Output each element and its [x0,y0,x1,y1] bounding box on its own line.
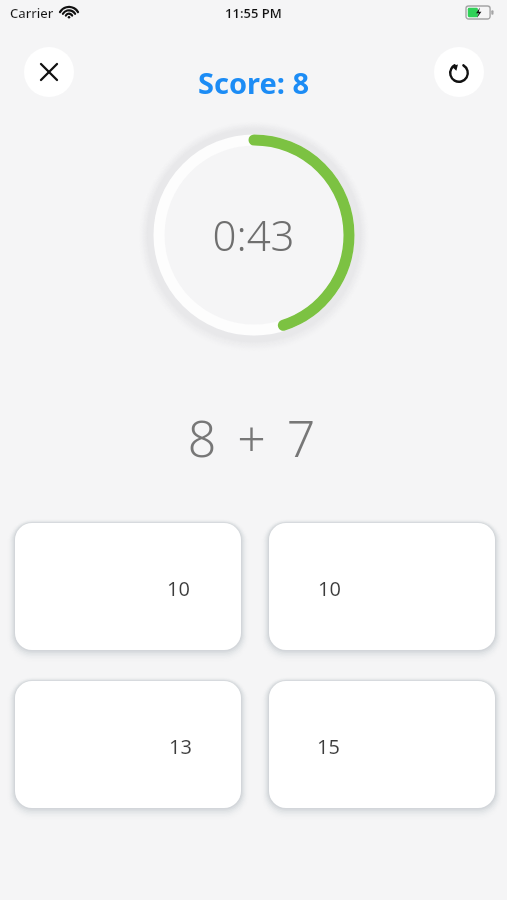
button[interactable]: Restart [434,47,484,97]
staticText: 15 [317,733,340,759]
staticText: 10 [167,575,190,601]
staticText: 0:43 [0,206,507,900]
staticText: 8 + 7 [0,404,507,900]
button[interactable] [15,681,241,808]
button[interactable] [269,523,495,650]
button[interactable]: Close [24,47,74,97]
staticText: Score: 8 [0,63,507,900]
staticText: 13 [169,733,192,759]
staticText: 10 [318,575,341,601]
button[interactable] [15,523,241,650]
button[interactable] [269,681,495,808]
staticText: Carrier [10,4,54,22]
staticText: 11:55 PM [0,4,507,900]
